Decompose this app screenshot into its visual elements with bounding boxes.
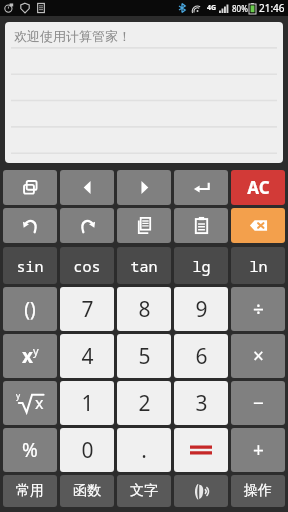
button[interactable]: y-th root of x	[3, 381, 57, 425]
button[interactable]: Copy	[117, 208, 171, 243]
staticText: 6	[195, 342, 208, 371]
button[interactable]: 文字	[117, 475, 171, 507]
button[interactable]: tan	[117, 247, 171, 284]
staticText: 8	[138, 295, 151, 324]
button[interactable]: 0	[60, 428, 114, 472]
button[interactable]: sin	[3, 247, 57, 284]
staticText: x	[35, 392, 44, 414]
button[interactable]: Windows	[3, 170, 57, 205]
staticText: AC	[247, 176, 270, 199]
staticText: y	[33, 343, 39, 358]
staticText: 常用	[16, 482, 44, 500]
staticText: ×	[253, 343, 264, 369]
staticText: y	[16, 390, 21, 401]
button[interactable]: AC	[231, 170, 285, 205]
button[interactable]: Voice input	[174, 475, 228, 507]
button[interactable]: 9	[174, 287, 228, 331]
staticText: 2	[138, 389, 151, 418]
button[interactable]: Equals	[174, 428, 228, 472]
button[interactable]: Left	[60, 170, 114, 205]
staticText: 3	[195, 389, 208, 418]
button[interactable]: Enter	[174, 170, 228, 205]
button[interactable]: 欢迎使用计算管家！	[5, 22, 283, 163]
button[interactable]: ÷	[231, 287, 285, 331]
button[interactable]: 1	[60, 381, 114, 425]
staticText: 80%	[232, 3, 248, 14]
staticText: 7	[81, 295, 94, 324]
button[interactable]: 6	[174, 334, 228, 378]
button[interactable]: 函数	[60, 475, 114, 507]
button[interactable]: −	[231, 381, 285, 425]
staticText: 4G	[207, 3, 217, 13]
button[interactable]: 7	[60, 287, 114, 331]
button[interactable]: 操作	[231, 475, 285, 507]
staticText: 1	[81, 389, 94, 418]
staticText: tan	[130, 256, 158, 276]
staticText: %	[22, 437, 38, 463]
staticText: cos	[73, 256, 101, 276]
staticText: 欢迎使用计算管家！	[14, 28, 131, 44]
staticText: 21:46	[259, 1, 285, 15]
button[interactable]: 5	[117, 334, 171, 378]
button[interactable]: +	[231, 428, 285, 472]
button[interactable]: Undo	[3, 208, 57, 243]
staticText: .	[141, 436, 147, 465]
staticText: 函数	[73, 482, 101, 500]
staticText: ()	[24, 296, 36, 322]
staticText: −	[253, 390, 264, 416]
button[interactable]: Redo	[60, 208, 114, 243]
button[interactable]: Paste	[174, 208, 228, 243]
staticText: 操作	[244, 482, 272, 500]
button[interactable]: %	[3, 428, 57, 472]
button[interactable]: x to the power of y	[3, 334, 57, 378]
staticText: 0	[81, 436, 94, 465]
staticText: 5	[138, 342, 151, 371]
button[interactable]: 常用	[3, 475, 57, 507]
button[interactable]: ×	[231, 334, 285, 378]
button[interactable]: lg	[174, 247, 228, 284]
button[interactable]: cos	[60, 247, 114, 284]
button[interactable]: ()	[3, 287, 57, 331]
button[interactable]: 3	[174, 381, 228, 425]
staticText: ÷	[253, 296, 264, 322]
staticText: ln	[249, 256, 268, 276]
staticText: 9	[195, 295, 208, 324]
button[interactable]: Backspace	[231, 208, 285, 243]
staticText: sin	[16, 256, 44, 276]
button[interactable]: 2	[117, 381, 171, 425]
staticText: 文字	[130, 482, 158, 500]
button[interactable]: 4	[60, 334, 114, 378]
staticText: 4	[81, 342, 94, 371]
button[interactable]: 8	[117, 287, 171, 331]
button[interactable]: ln	[231, 247, 285, 284]
button[interactable]: Right	[117, 170, 171, 205]
staticText: +	[253, 437, 264, 463]
staticText: x	[22, 343, 33, 369]
staticText: lg	[192, 256, 211, 276]
button[interactable]: .	[117, 428, 171, 472]
